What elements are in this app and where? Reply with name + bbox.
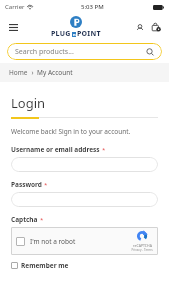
staticText: 5:03 PM	[81, 3, 104, 11]
button[interactable]	[11, 192, 158, 207]
staticText: *	[40, 216, 44, 224]
staticText: *	[44, 181, 48, 189]
button[interactable]: Search products...	[7, 43, 162, 60]
staticText: Search products...	[15, 47, 74, 57]
button[interactable]: Menu	[6, 20, 20, 34]
staticText: reCAPTCHA	[133, 243, 152, 248]
staticText: Login	[11, 94, 46, 112]
staticText: Captcha	[11, 215, 38, 224]
staticText: Remember me	[21, 261, 69, 270]
staticText: *	[102, 146, 106, 154]
button[interactable]: Home	[9, 68, 28, 77]
button[interactable]: Remember me	[11, 261, 69, 270]
staticText: Privacy - Terms	[131, 248, 153, 252]
staticText: PLUG	[51, 29, 71, 39]
staticText: My Account	[37, 68, 73, 77]
staticText: Welcome back! Sign in to your account.	[11, 127, 131, 136]
button[interactable]: Cart	[149, 20, 163, 34]
staticText: POINT	[77, 29, 101, 39]
staticText: Password	[11, 180, 42, 189]
staticText: I'm not a robot	[30, 237, 76, 246]
button[interactable]	[11, 157, 158, 172]
staticText: Username or email address	[11, 145, 100, 154]
staticText: ›	[28, 68, 37, 77]
button[interactable]: I'm not a robot	[11, 227, 158, 255]
staticText: n	[73, 32, 76, 37]
button[interactable]: Account	[133, 21, 146, 34]
staticText: Carrier	[5, 3, 25, 11]
